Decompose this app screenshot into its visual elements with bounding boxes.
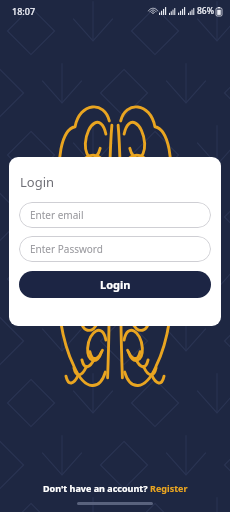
staticText: Login xyxy=(100,277,131,292)
staticText: Login xyxy=(20,173,55,191)
staticText: Register xyxy=(150,482,188,494)
staticText: 86% xyxy=(197,5,214,17)
button[interactable]: Enter Password xyxy=(19,236,211,262)
staticText: Enter Password xyxy=(30,242,103,256)
staticText: Don't have an account? xyxy=(43,482,150,494)
staticText: 18:07 xyxy=(12,5,36,17)
button[interactable]: Login xyxy=(19,271,211,298)
staticText: Enter email xyxy=(30,208,84,222)
button[interactable]: Register xyxy=(150,482,188,494)
button[interactable]: Enter email xyxy=(19,202,211,228)
